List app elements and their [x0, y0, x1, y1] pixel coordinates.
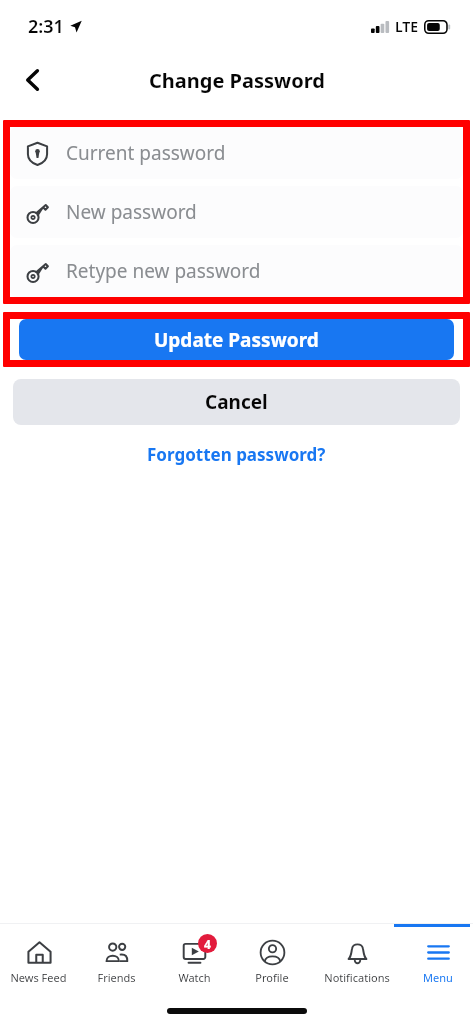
staticText: News Feed — [10, 970, 67, 985]
staticText: Notifications — [324, 970, 390, 985]
button[interactable]: Current password — [10, 127, 463, 179]
staticText: Watch — [178, 970, 211, 985]
staticText: Current password — [66, 140, 226, 166]
button[interactable]: New password — [10, 186, 463, 238]
staticText: Update Password — [154, 327, 319, 353]
button[interactable]: Notifications — [311, 924, 402, 998]
button[interactable]: 4 — [155, 924, 233, 998]
button[interactable]: News Feed — [0, 924, 77, 998]
staticText: Forgotten password? — [147, 443, 326, 466]
button[interactable]: Update Password — [19, 319, 454, 360]
staticText: Profile — [255, 970, 289, 985]
button[interactable]: Forgotten password? — [137, 439, 336, 470]
button[interactable]: Menu — [402, 924, 473, 998]
staticText: Retype new password — [66, 258, 261, 284]
staticText: LTE — [395, 17, 419, 36]
button[interactable]: Back — [10, 57, 56, 103]
staticText: Change Password — [149, 67, 325, 94]
staticText: New password — [66, 199, 197, 225]
button[interactable]: Profile — [233, 924, 311, 998]
staticText: 2:31 — [28, 14, 64, 39]
button[interactable]: Cancel — [13, 379, 460, 425]
staticText: Friends — [97, 970, 136, 985]
staticText: Cancel — [205, 389, 268, 415]
staticText: Menu — [423, 970, 453, 985]
staticText: 4 — [204, 936, 211, 952]
button[interactable]: Friends — [77, 924, 155, 998]
button[interactable]: Retype new password — [10, 245, 463, 297]
